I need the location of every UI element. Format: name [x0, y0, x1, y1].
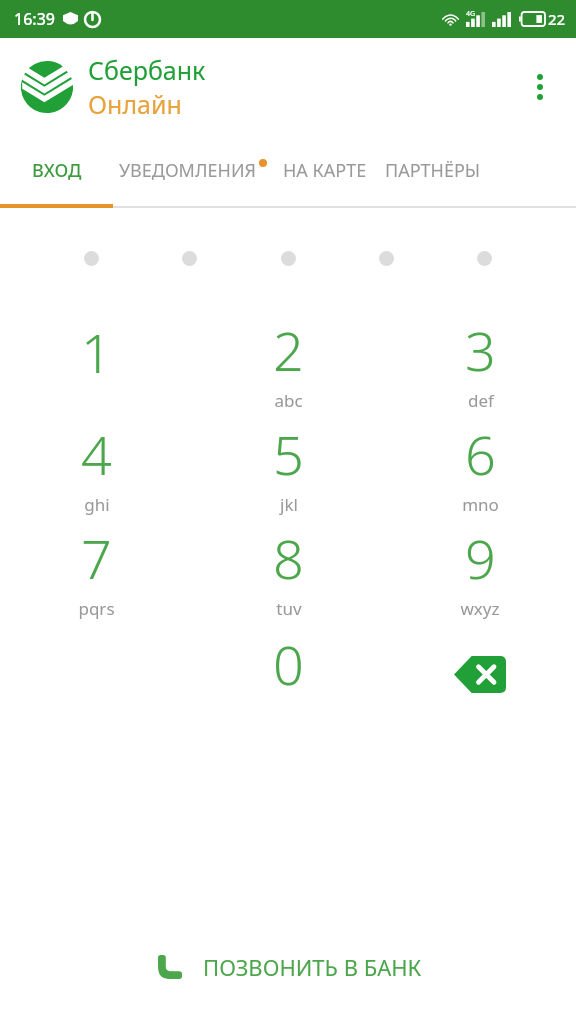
button[interactable]: 7	[0, 518, 192, 622]
button[interactable]: 8	[192, 518, 384, 622]
button[interactable]: Backspace	[384, 622, 576, 726]
button[interactable]: ПОЗВОНИТЬ В БАНК	[0, 942, 576, 992]
staticText: 0	[273, 627, 304, 701]
staticText: abc	[274, 389, 303, 412]
staticText: wxyz	[460, 597, 500, 620]
staticText: 5	[273, 417, 304, 491]
button[interactable]: 6	[384, 414, 576, 518]
staticText: 3	[465, 313, 496, 387]
button[interactable]: 2	[192, 310, 384, 414]
button[interactable]: 1	[0, 310, 192, 414]
staticText: 16:39	[14, 8, 55, 30]
staticText: 4	[81, 417, 112, 491]
staticText: 4G	[466, 9, 476, 19]
button[interactable]: 0	[192, 622, 384, 726]
staticText: ПАРТНЁРЫ	[385, 158, 481, 183]
staticText: ПОЗВОНИТЬ В БАНК	[203, 952, 422, 982]
staticText: 22	[548, 9, 566, 29]
button[interactable]: More options	[514, 61, 566, 113]
button[interactable]: ПАРТНЁРЫ	[385, 158, 481, 183]
button[interactable]: 5	[192, 414, 384, 518]
staticText: Онлайн	[88, 87, 182, 121]
staticText: 9	[465, 521, 496, 595]
staticText: 7	[81, 521, 112, 595]
staticText: 8	[273, 521, 304, 595]
staticText: pqrs	[78, 597, 115, 620]
button[interactable]: 4	[0, 414, 192, 518]
button[interactable]: УВЕДОМЛЕНИЯ	[113, 158, 273, 183]
staticText: ВХОД	[32, 158, 82, 183]
button[interactable]: 3	[384, 310, 576, 414]
staticText: 6	[465, 417, 496, 491]
staticText: ghi	[84, 493, 110, 516]
staticText: 2	[273, 313, 304, 387]
staticText: mno	[462, 493, 499, 516]
staticText: def	[468, 389, 494, 412]
staticText: 1	[81, 315, 112, 389]
button[interactable]: НА КАРТЕ	[283, 158, 367, 183]
button[interactable]: 9	[384, 518, 576, 622]
staticText: УВЕДОМЛЕНИЯ	[119, 158, 256, 183]
staticText: tuv	[276, 597, 302, 620]
button[interactable]: ВХОД	[0, 136, 113, 204]
staticText: Сбербанк	[88, 53, 206, 87]
staticText: НА КАРТЕ	[283, 158, 367, 183]
staticText: jkl	[280, 493, 298, 516]
